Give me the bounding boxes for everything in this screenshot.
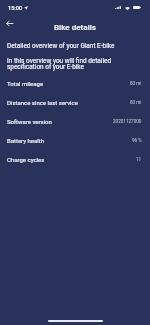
button[interactable]: Total mileage [0, 74, 150, 93]
staticText: Bike details [54, 22, 97, 31]
staticText: Detailed overview of your Giant E-bike [7, 42, 115, 50]
staticText: Battery health [7, 137, 44, 144]
button[interactable]: Charge cycles [0, 150, 150, 169]
staticText: Distance since last service [7, 99, 78, 106]
staticText: 96 % [132, 138, 142, 143]
staticText: Charge cycles [7, 156, 45, 163]
button[interactable]: Battery health [0, 131, 150, 150]
staticText: Software version [7, 118, 52, 125]
button[interactable]: Back [2, 16, 16, 30]
staticText: 15:00 [8, 5, 23, 12]
staticText: Total mileage [7, 80, 44, 87]
staticText: 80 mi [130, 81, 142, 86]
button[interactable]: Software version [0, 112, 150, 131]
staticText: 20201127000 [113, 119, 142, 124]
button[interactable]: Distance since last service [0, 93, 150, 112]
staticText: 11 [136, 157, 142, 162]
staticText: In this overview you will find detailed … [7, 57, 118, 71]
staticText: 80 mi [130, 100, 142, 105]
